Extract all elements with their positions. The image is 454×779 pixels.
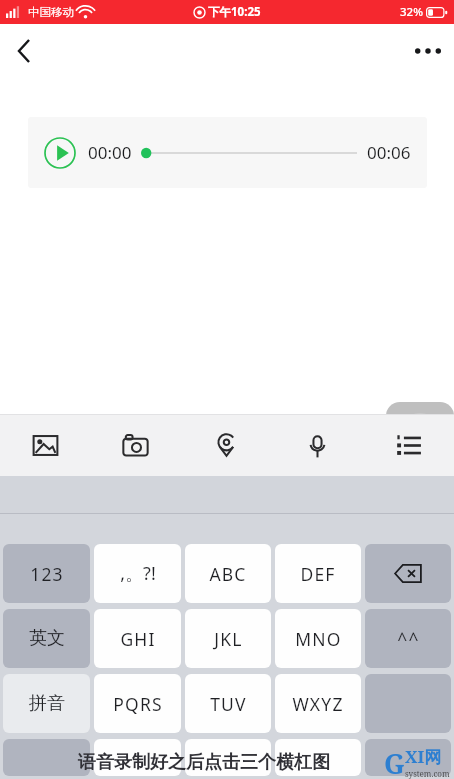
staticText: ,。?! (120, 561, 156, 586)
staticText: 语音录制好之后点击三个横杠图 (78, 751, 330, 774)
staticText: 英文 (29, 627, 65, 650)
staticText: ^^ (397, 627, 420, 651)
staticText: 中国移动 (28, 5, 74, 19)
button[interactable]: PQRS (94, 674, 181, 733)
staticText: 32% (400, 4, 423, 20)
staticText: DEF (300, 562, 336, 586)
staticText: system.com (405, 768, 450, 779)
staticText: 123 (30, 562, 64, 586)
button[interactable]: Backspace (365, 544, 451, 603)
button[interactable]: More (363, 415, 454, 476)
button[interactable]: Play (28, 117, 427, 188)
button[interactable]: Key (3, 739, 90, 776)
button[interactable]: 123 (3, 544, 90, 603)
button[interactable]: ^^ (365, 609, 451, 668)
staticText: 00:06 (367, 141, 411, 164)
button[interactable]: JKL (185, 609, 271, 668)
button[interactable]: Key (275, 739, 361, 776)
button[interactable]: ABC (185, 544, 271, 603)
button[interactable]: Location (181, 415, 272, 476)
button[interactable]: Photos (0, 415, 90, 476)
staticText: 拼音 (29, 692, 65, 715)
button[interactable]: Key (365, 739, 451, 776)
staticText: G (384, 745, 405, 779)
staticText: 00:00 (88, 141, 132, 164)
staticText: TUV (210, 692, 247, 716)
button[interactable]: Record (386, 402, 454, 470)
button[interactable]: Key (94, 739, 181, 776)
staticText: XI网 (405, 745, 442, 768)
button[interactable]: 拼音 (3, 674, 90, 733)
button[interactable]: Camera (90, 415, 181, 476)
staticText: MNO (295, 627, 342, 651)
button[interactable]: ,。?! (94, 544, 181, 603)
staticText: JKL (214, 627, 243, 651)
button[interactable]: MNO (275, 609, 361, 668)
button[interactable]: Voice message (272, 415, 363, 476)
staticText: 下午10:25 (208, 4, 261, 20)
button[interactable]: Key (185, 739, 271, 776)
button[interactable]: TUV (185, 674, 271, 733)
staticText: WXYZ (292, 692, 344, 716)
staticText: PQRS (113, 692, 163, 716)
button[interactable]: 英文 (3, 609, 90, 668)
button[interactable]: Back (0, 27, 48, 75)
button[interactable]: DEF (275, 544, 361, 603)
button[interactable]: Play (44, 137, 76, 169)
staticText: ABC (209, 562, 247, 586)
button[interactable]: WXYZ (275, 674, 361, 733)
button[interactable]: GHI (94, 609, 181, 668)
staticText: GHI (120, 627, 156, 651)
button[interactable]: More options (402, 25, 454, 77)
